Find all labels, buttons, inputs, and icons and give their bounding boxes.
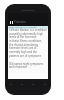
staticText: Old apnea night symptoms [9,62,44,66]
staticText: Prolactin [14,20,26,24]
staticText: levels of the hormone [9,35,37,39]
staticText: normally high and the [9,50,37,54]
staticText: hormone levels are of [9,46,37,50]
staticText: and treatment [9,65,28,69]
button[interactable]: Menu [16,82,27,86]
button[interactable]: Prolactin [8,13,48,26]
staticText: the thyroid-stimulating [9,43,39,47]
staticText: in these illness conditions, [9,39,43,43]
button[interactable]: HOW PROLACTIN WORKS [8,26,48,29]
staticText: caused by abnormally high [9,32,43,36]
button[interactable]: Search [39,82,51,86]
staticText: HOW PROLACTIN WORKS [9,26,37,29]
button[interactable]: Back [5,82,16,86]
staticText: patients are of symptoms [9,54,42,58]
button[interactable]: Home [27,82,39,86]
staticText: Cellcare disease is a condition [9,28,47,32]
